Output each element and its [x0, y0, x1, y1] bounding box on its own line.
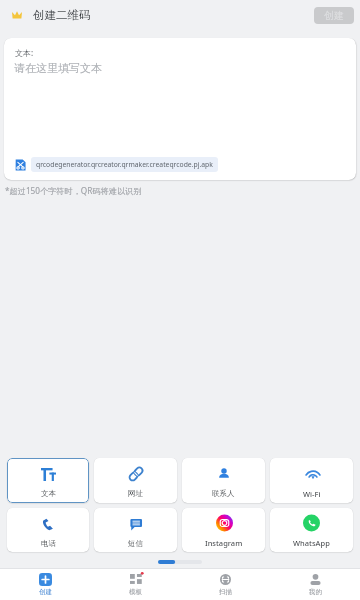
- button[interactable]: 模板: [90, 569, 180, 600]
- staticText: 扫描: [219, 588, 232, 596]
- staticText: 网址: [128, 489, 143, 498]
- button[interactable]: Wi-Fi: [270, 458, 353, 503]
- staticText: 电话: [41, 539, 56, 548]
- button[interactable]: Instagram: [182, 508, 265, 552]
- staticText: 创建: [39, 588, 52, 596]
- staticText: 文本: [41, 489, 56, 498]
- button[interactable]: 创建: [314, 7, 354, 24]
- button[interactable]: 网址: [94, 458, 177, 503]
- button[interactable]: 我的: [270, 569, 360, 600]
- button[interactable]: 扫描: [180, 569, 270, 600]
- staticText: 短信: [128, 539, 143, 548]
- button[interactable]: WhatsApp: [270, 508, 353, 552]
- staticText: qrcodegenerator.qrcreator.qrmaker.create…: [36, 160, 213, 169]
- staticText: 创建: [324, 9, 344, 22]
- staticText: 文本:: [15, 47, 34, 58]
- staticText: *超过150个字符时，QR码将难以识别: [5, 185, 142, 196]
- staticText: 联系人: [212, 489, 235, 498]
- staticText: 我的: [309, 588, 322, 596]
- staticText: 模板: [129, 588, 142, 596]
- staticText: Wi-Fi: [303, 489, 321, 499]
- button[interactable]: 短信: [94, 508, 177, 552]
- button[interactable]: 电话: [7, 508, 89, 552]
- staticText: Instagram: [205, 538, 243, 548]
- button[interactable]: 联系人: [182, 458, 265, 503]
- staticText: WhatsApp: [293, 538, 330, 548]
- button[interactable]: 文本: [7, 458, 89, 503]
- button[interactable]: 创建: [0, 569, 90, 600]
- staticText: 创建二维码: [33, 8, 91, 22]
- staticText: 请在这里填写文本: [14, 61, 102, 75]
